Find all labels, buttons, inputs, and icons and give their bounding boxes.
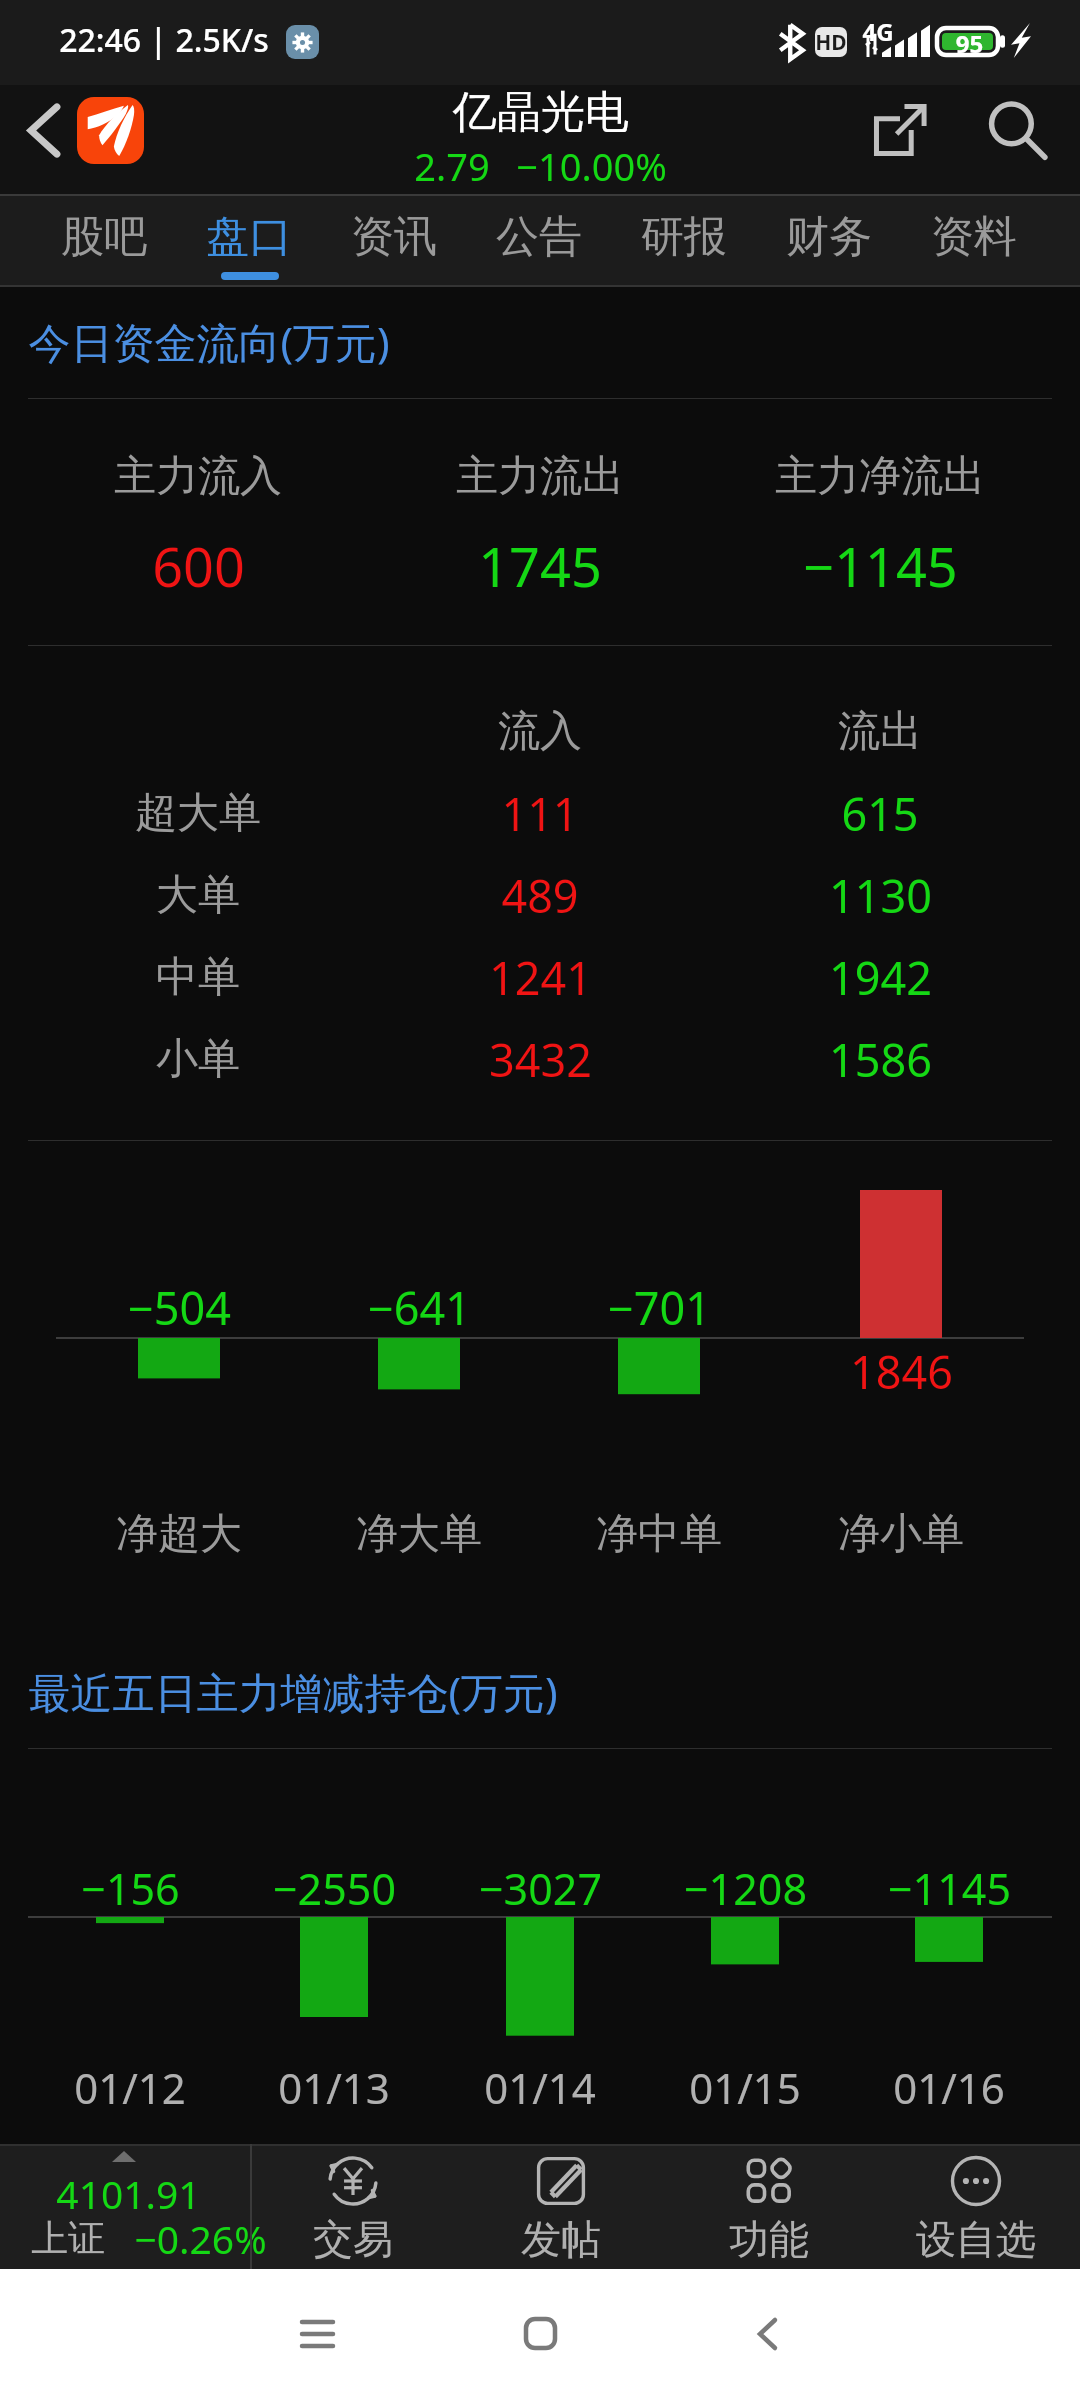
staticText: 中单	[156, 951, 240, 1004]
staticText: 95	[949, 27, 990, 60]
staticText: 1745	[478, 529, 602, 603]
staticText: −641	[368, 1277, 471, 1338]
staticText: 超大单	[135, 787, 261, 840]
staticText: 1241	[489, 947, 592, 1008]
staticText: 01/12	[74, 2059, 186, 2116]
staticText: 设自选	[916, 2214, 1036, 2264]
staticText: 研报	[641, 210, 727, 264]
staticText: 01/14	[484, 2059, 596, 2116]
staticText: 主力流出	[456, 450, 624, 503]
staticText: 资讯	[351, 210, 437, 264]
button[interactable]: 发帖	[457, 2144, 665, 2269]
button[interactable]: Search	[975, 88, 1059, 172]
staticText: −3027	[479, 1859, 602, 1918]
staticText: 公告	[496, 210, 582, 264]
staticText: −156	[81, 1859, 180, 1918]
staticText: 盘口	[206, 210, 292, 264]
button[interactable]: 功能	[665, 2144, 873, 2269]
button[interactable]: 公告	[467, 194, 611, 287]
staticText: 主力净流出	[775, 450, 985, 503]
staticText: 615	[841, 783, 919, 844]
button[interactable]: Home	[470, 2269, 610, 2400]
staticText: 01/16	[893, 2059, 1005, 2116]
button[interactable]: 财务	[757, 194, 901, 287]
staticText: −2550	[273, 1859, 396, 1918]
staticText: 小单	[156, 1033, 240, 1086]
staticText: 1130	[829, 865, 932, 926]
staticText: −0.26%	[134, 2212, 267, 2265]
button[interactable]: 研报	[612, 194, 756, 287]
staticText: 1846	[850, 1341, 953, 1402]
staticText: 发帖	[521, 2214, 601, 2264]
staticText: 净中单	[596, 1508, 722, 1561]
staticText: −701	[608, 1277, 711, 1338]
button[interactable]: 盘口	[177, 194, 321, 287]
staticText: 600	[152, 529, 245, 603]
staticText: 3432	[489, 1029, 592, 1090]
staticText: 01/15	[689, 2059, 801, 2116]
button[interactable]: Back	[9, 95, 79, 165]
staticText: 流出	[838, 705, 922, 758]
staticText: −1145	[803, 529, 958, 603]
staticText: −504	[128, 1277, 231, 1338]
button[interactable]: Share	[858, 88, 942, 172]
button[interactable]: 股吧	[32, 194, 176, 287]
staticText: 股吧	[61, 210, 147, 264]
staticText: 上证	[31, 2215, 105, 2262]
staticText: −1208	[684, 1859, 807, 1918]
button[interactable]: Home	[77, 97, 144, 164]
staticText: 净超大	[116, 1508, 242, 1561]
button[interactable]: 资料	[902, 194, 1046, 287]
staticText: 1586	[829, 1029, 932, 1090]
staticText: 2.79	[414, 140, 490, 192]
staticText: 资料	[931, 210, 1017, 264]
staticText: 今日资金流向(万元)	[28, 313, 390, 370]
staticText: −1145	[888, 1859, 1011, 1918]
staticText: 净大单	[356, 1508, 482, 1561]
staticText: 01/13	[278, 2059, 390, 2116]
staticText: 交易	[313, 2214, 393, 2264]
button[interactable]: 交易	[249, 2144, 457, 2269]
staticText: −10.00%	[516, 140, 667, 192]
staticText: 22:46 | 2.5K/s	[59, 18, 269, 62]
button[interactable]: Back	[697, 2269, 837, 2400]
staticText: 亿晶光电	[453, 85, 629, 140]
staticText: 4G	[862, 15, 894, 48]
staticText: 主力流入	[114, 450, 282, 503]
button[interactable]: 资讯	[322, 194, 466, 287]
staticText: HD	[815, 28, 847, 57]
button[interactable]: Recent apps	[247, 2269, 387, 2400]
staticText: 净小单	[838, 1508, 964, 1561]
staticText: 1942	[829, 947, 932, 1008]
staticText: 4101.91	[56, 2167, 201, 2220]
staticText: 最近五日主力增减持仓(万元)	[28, 1663, 558, 1720]
staticText: 功能	[729, 2214, 809, 2264]
staticText: 111	[501, 783, 579, 844]
button[interactable]: 设自选	[872, 2144, 1080, 2269]
button[interactable]: 4101.91	[0, 2144, 250, 2269]
staticText: 489	[501, 865, 579, 926]
staticText: 流入	[498, 705, 582, 758]
staticText: 大单	[156, 869, 240, 922]
staticText: 财务	[786, 210, 872, 264]
